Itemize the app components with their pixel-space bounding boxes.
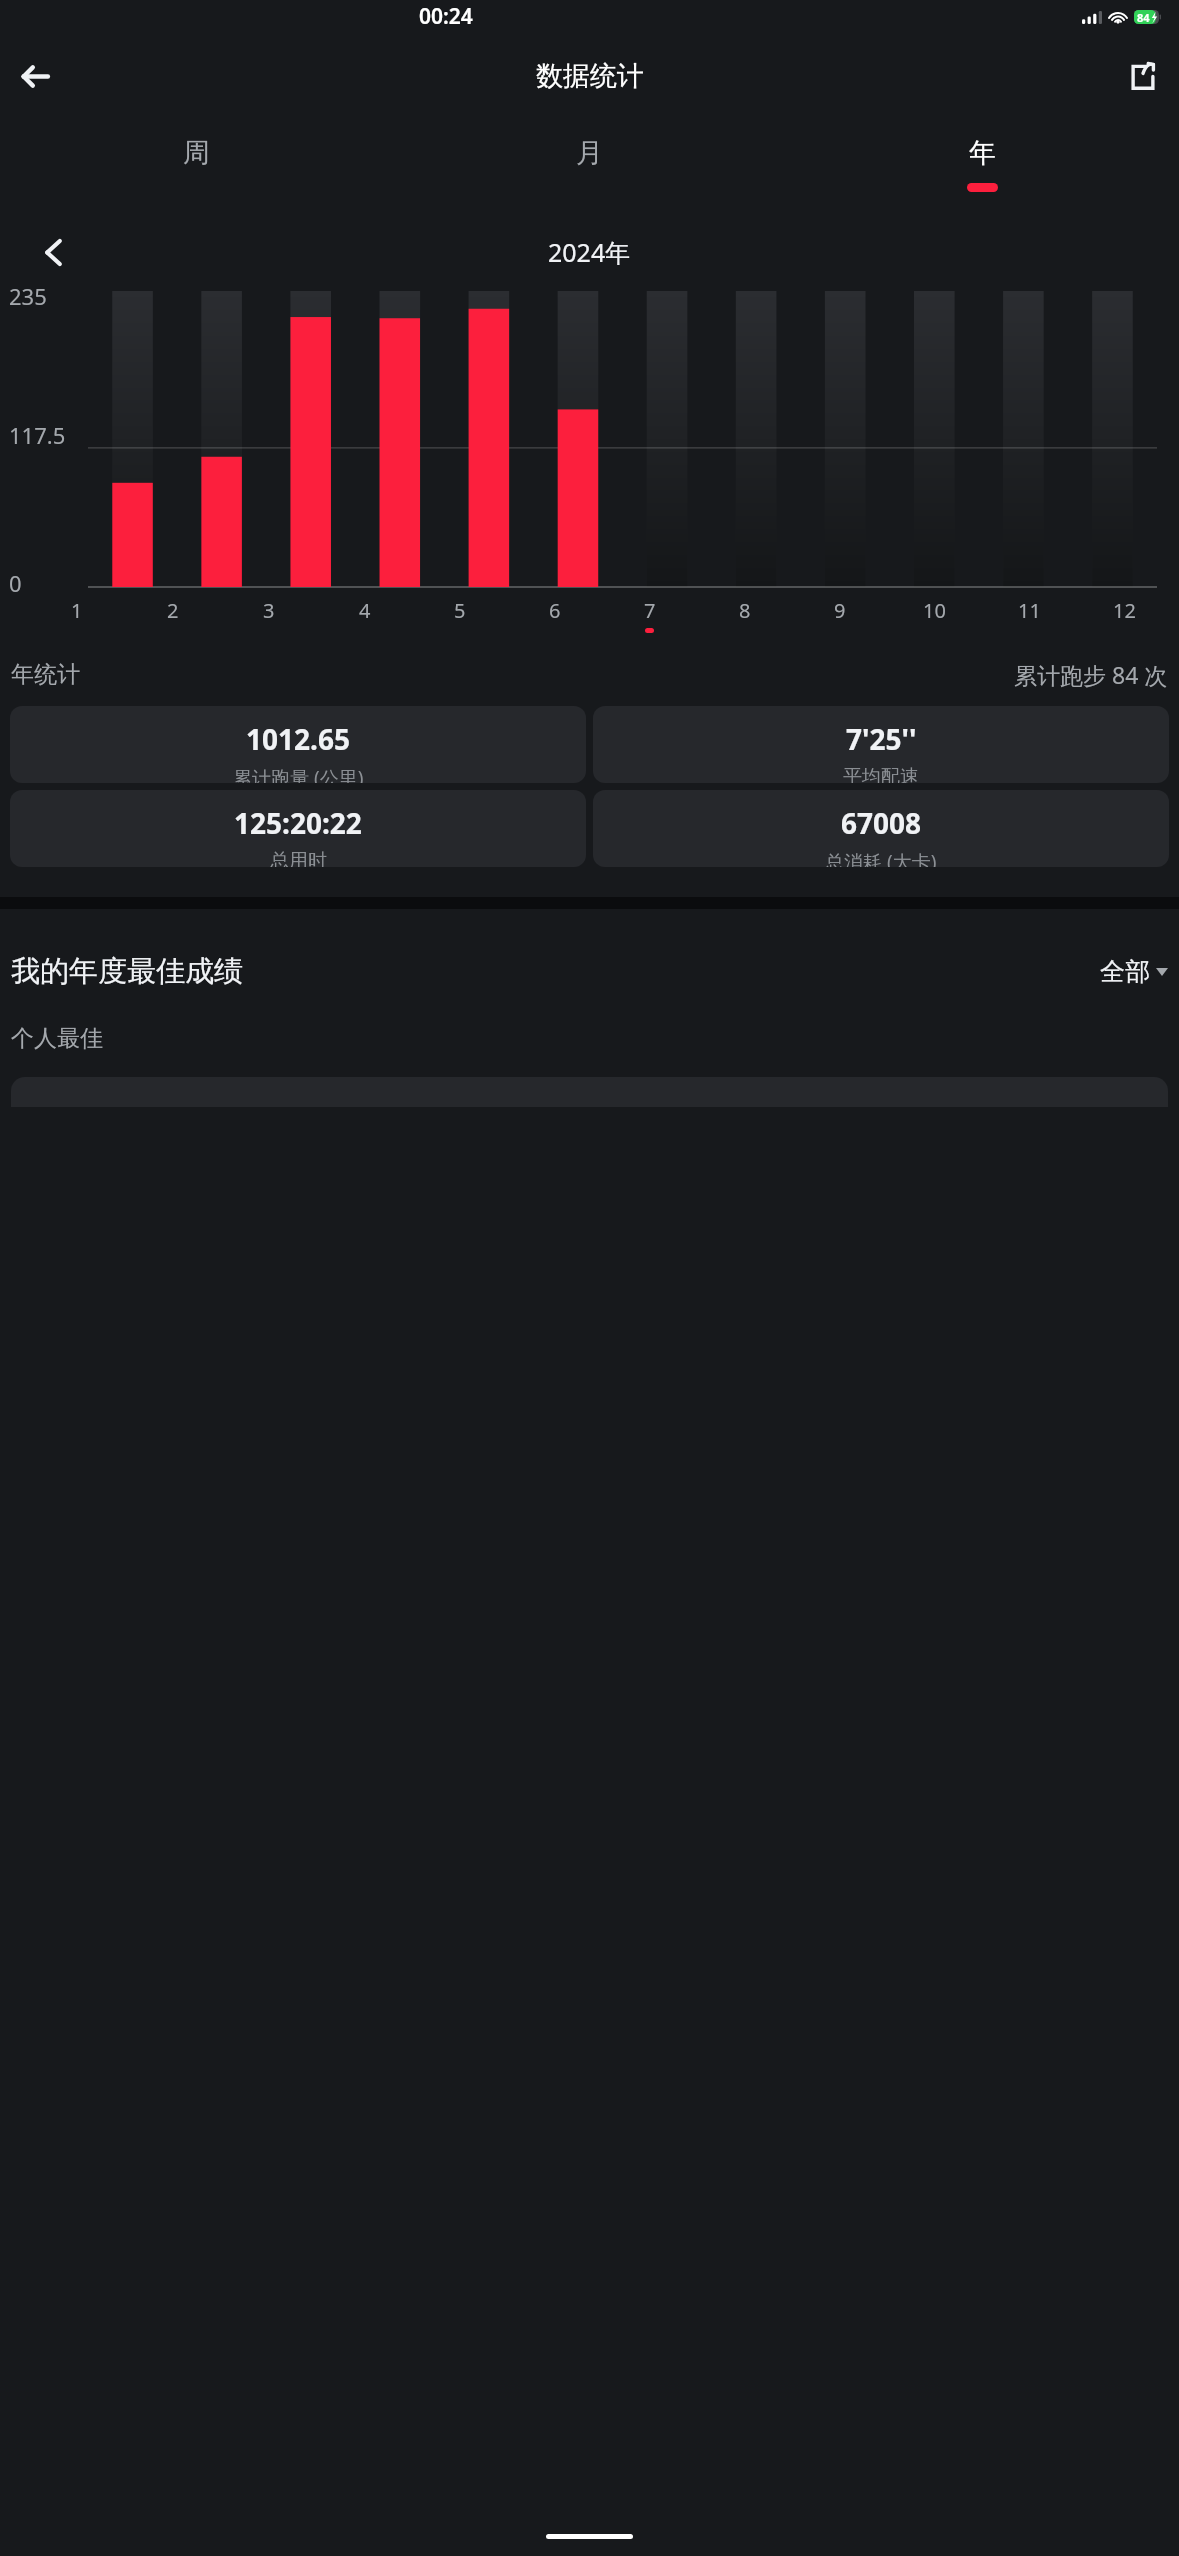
button[interactable]: Back <box>6 47 64 105</box>
staticText: 总用时 <box>270 849 327 867</box>
button[interactable]: Previous year <box>26 225 80 279</box>
staticText: 累计跑步 84 次 <box>1014 659 1168 690</box>
button[interactable]: 年 <box>786 118 1179 213</box>
staticText: 总消耗 (大卡) <box>825 849 937 867</box>
staticText: 3 <box>263 597 275 624</box>
staticText: 8 <box>739 597 751 624</box>
staticText: 累计跑量 (公里) <box>233 765 364 783</box>
staticText: 个人最佳 <box>11 1024 103 1053</box>
staticText: 2024年 <box>548 235 631 269</box>
staticText: 117.5 <box>9 420 66 450</box>
button[interactable]: 全部 <box>1100 956 1168 987</box>
staticText: 12 <box>1113 597 1136 624</box>
staticText: 0 <box>9 568 22 598</box>
staticText: 7'25'' <box>846 720 917 758</box>
button[interactable]: 周 <box>0 118 393 213</box>
staticText: 67008 <box>841 804 922 842</box>
button[interactable]: 7'25'' <box>593 706 1169 783</box>
staticText: 00:24 <box>419 2 473 31</box>
staticText: 年 <box>969 136 996 170</box>
staticText: 11 <box>1018 597 1041 624</box>
staticText: 9 <box>834 597 846 624</box>
staticText: 7 <box>644 597 656 624</box>
button[interactable]: 月 <box>393 118 786 213</box>
staticText: 5 <box>454 597 466 624</box>
staticText: 235 <box>9 281 47 311</box>
staticText: 全部 <box>1100 956 1150 987</box>
staticText: 月 <box>576 136 603 170</box>
button[interactable]: 125:20:22 <box>10 790 586 867</box>
staticText: 4 <box>359 597 371 624</box>
staticText: 6 <box>549 597 561 624</box>
staticText: 1012.65 <box>246 720 350 758</box>
staticText: 我的年度最佳成绩 <box>11 953 243 990</box>
staticText: 平均配速 <box>843 765 919 783</box>
staticText: 年统计 <box>11 660 80 689</box>
staticText: 2 <box>167 597 179 624</box>
button[interactable]: 67008 <box>593 790 1169 867</box>
button[interactable]: 1012.65 <box>10 706 586 783</box>
staticText: 1 <box>71 597 83 624</box>
staticText: 周 <box>183 136 210 170</box>
staticText: 125:20:22 <box>234 804 362 842</box>
button[interactable]: Share <box>1115 48 1171 104</box>
staticText: 数据统计 <box>536 59 644 93</box>
staticText: 10 <box>923 597 946 624</box>
staticText: 84 <box>1137 10 1150 24</box>
